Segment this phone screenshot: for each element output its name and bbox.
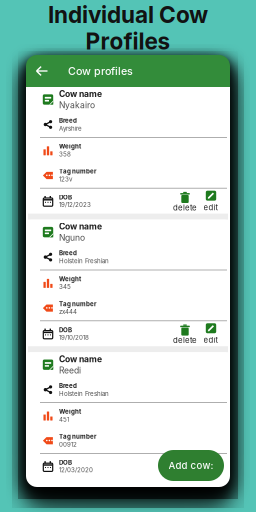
staticText: Nyakairo: [59, 100, 95, 110]
staticText: Tag number: [59, 168, 96, 175]
staticText: 00912: [59, 441, 77, 448]
staticText: zx444: [59, 308, 77, 315]
staticText: Cow name: [59, 354, 102, 364]
staticText: 451: [59, 416, 69, 423]
staticText: Cow name: [59, 221, 102, 232]
staticText: Weight: [59, 143, 81, 150]
staticText: Weight: [59, 275, 81, 283]
staticText: delete: [173, 335, 197, 345]
button[interactable]: Add cow:: [158, 450, 224, 481]
button[interactable]: Back: [26, 55, 58, 87]
staticText: 358: [59, 151, 71, 158]
button[interactable]: edit: [198, 323, 224, 345]
staticText: Breed: [59, 382, 77, 389]
staticText: DOB: [59, 194, 72, 201]
staticText: delete: [173, 203, 197, 212]
staticText: DOB: [59, 459, 72, 466]
button[interactable]: edit: [198, 190, 224, 212]
staticText: Profiles: [85, 27, 170, 55]
staticText: edit: [203, 203, 218, 212]
staticText: edit: [203, 335, 218, 345]
staticText: 12/03/2020: [59, 466, 93, 474]
staticText: Breed: [59, 249, 77, 257]
staticText: Holstein Freshian: [59, 257, 109, 265]
staticText: Cow name: [59, 89, 102, 99]
staticText: 345: [59, 283, 71, 290]
staticText: Ayrshire: [59, 125, 82, 132]
staticText: Reedi: [59, 365, 81, 375]
button[interactable]: delete: [172, 322, 198, 345]
button[interactable]: delete: [172, 190, 198, 212]
staticText: DOB: [59, 326, 72, 334]
staticText: Tag number: [59, 433, 96, 440]
staticText: Weight: [59, 408, 81, 415]
staticText: 19/10/2018: [59, 334, 89, 341]
staticText: Nguno: [59, 233, 85, 243]
staticText: delete: [173, 468, 197, 477]
staticText: Tag number: [59, 300, 96, 308]
staticText: Individual Cow: [48, 1, 208, 28]
staticText: 123v: [59, 176, 72, 183]
staticText: 19/12/2023: [59, 201, 91, 208]
staticText: Holstein Freshian: [59, 390, 109, 397]
staticText: Add cow:: [168, 460, 213, 471]
staticText: Breed: [59, 117, 77, 124]
button[interactable]: edit: [198, 455, 224, 477]
staticText: edit: [203, 468, 218, 477]
staticText: Cow profiles: [68, 64, 133, 77]
button[interactable]: delete: [172, 455, 198, 477]
